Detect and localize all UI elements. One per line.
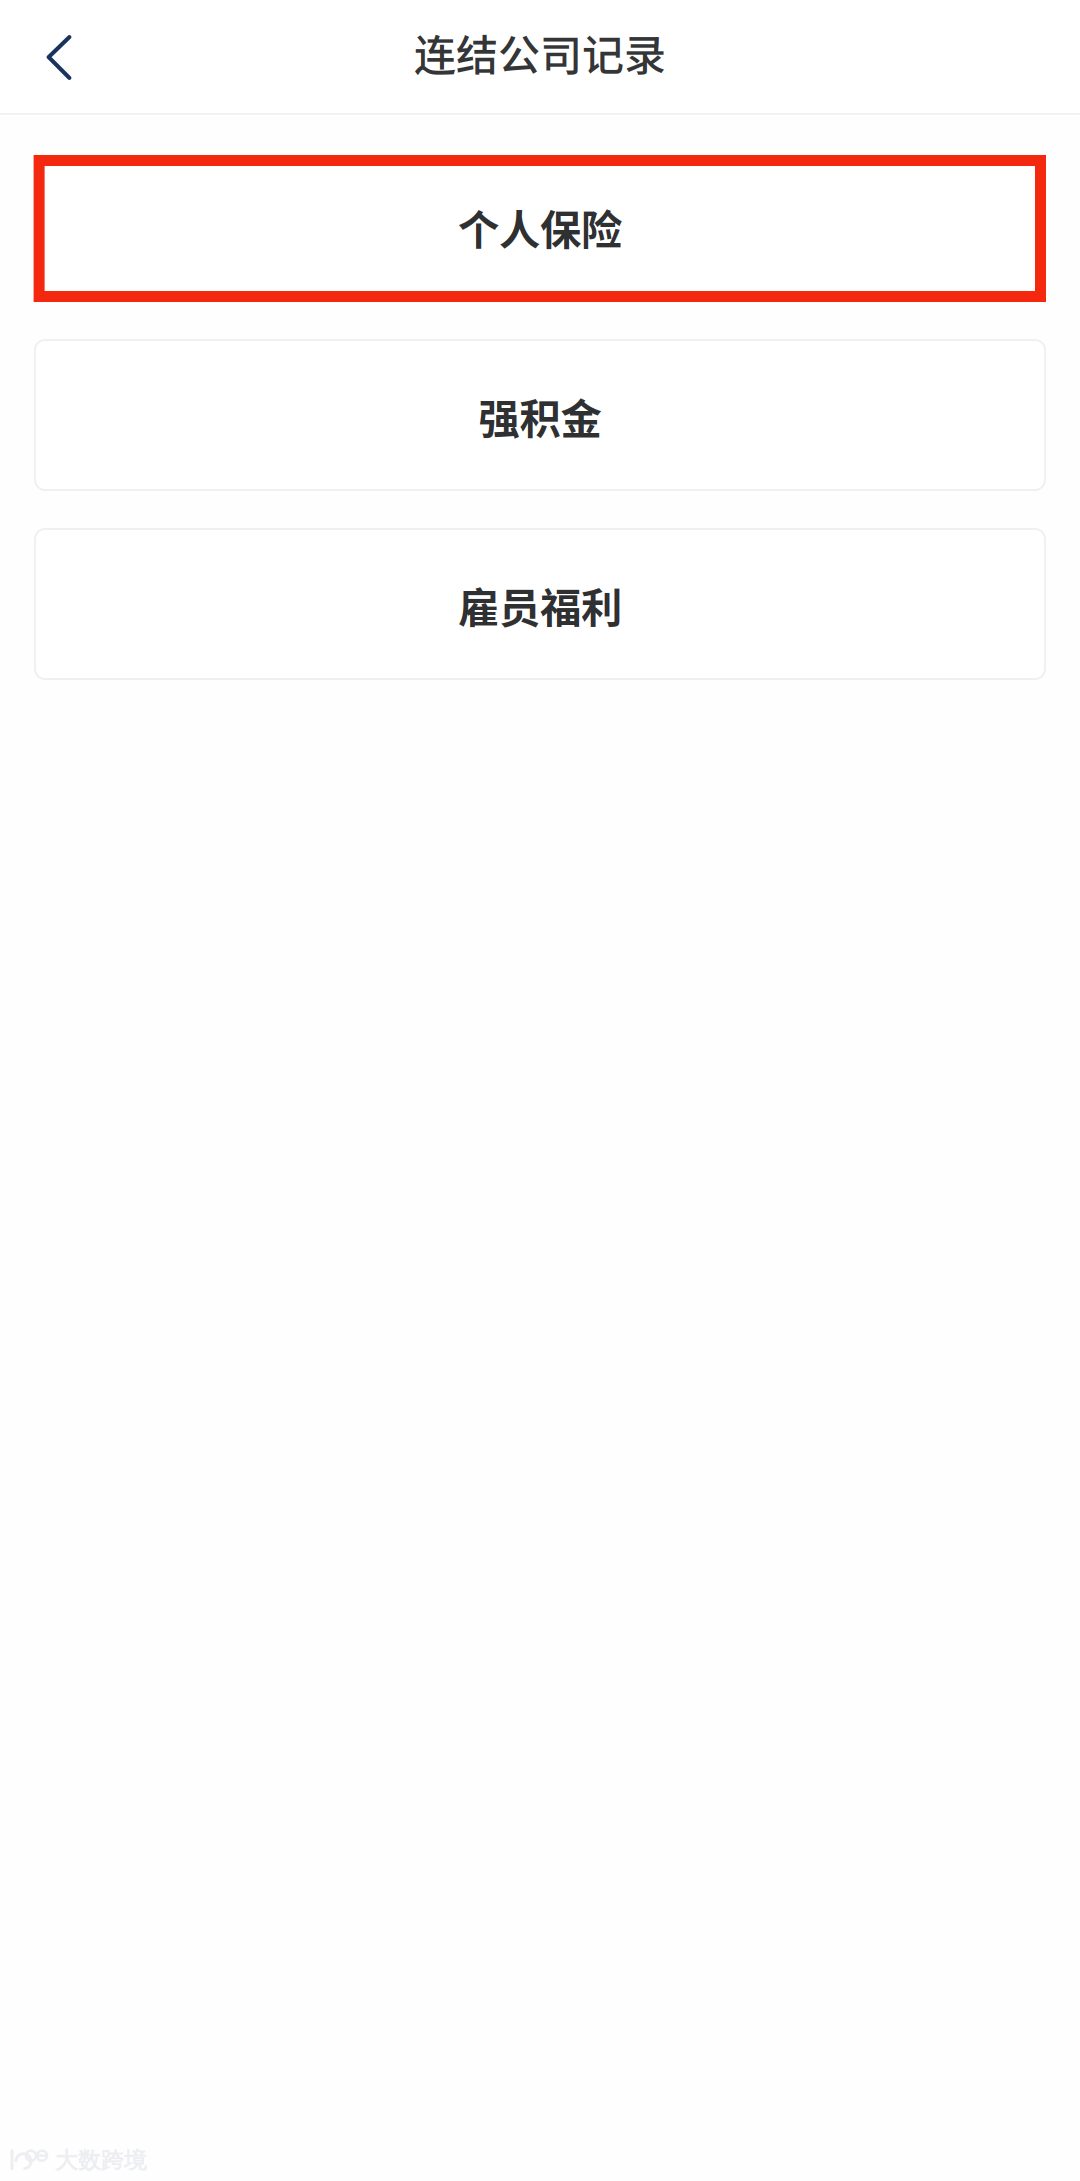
button[interactable]: 强积金 <box>35 340 1045 490</box>
staticText: 连结公司记录 <box>414 22 666 83</box>
button[interactable]: 返回 <box>0 0 114 115</box>
staticText: 雇员福利 <box>458 575 622 635</box>
button[interactable]: 雇员福利 <box>35 529 1045 679</box>
button[interactable]: 个人保险 <box>35 151 1045 301</box>
staticText: 大数跨境 <box>55 2146 147 2175</box>
staticText: 强积金 <box>478 386 601 446</box>
staticText: 个人保险 <box>458 197 622 257</box>
